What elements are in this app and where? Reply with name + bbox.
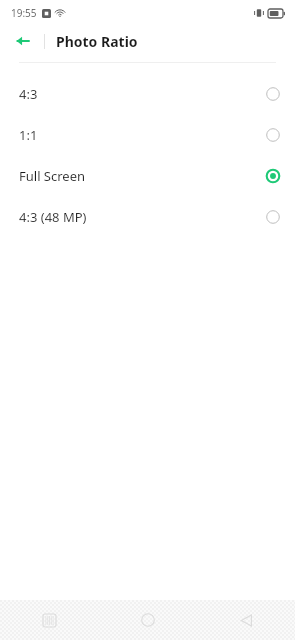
staticText: 1:1 (19, 126, 266, 144)
button[interactable]: Back (197, 600, 295, 640)
button[interactable]: 4:3 (0, 73, 295, 114)
button[interactable]: Full Screen (0, 155, 295, 196)
button[interactable]: Recents (0, 600, 99, 640)
staticText: Photo Ratio (56, 32, 138, 51)
staticText: 19:55 (11, 6, 37, 20)
button[interactable]: 4:3 (48 MP) (0, 196, 295, 237)
button[interactable]: Back (10, 28, 36, 54)
button[interactable]: Home (99, 600, 197, 640)
staticText: 4:3 (48 MP) (19, 208, 266, 226)
button[interactable]: 1:1 (0, 114, 295, 155)
staticText: 4:3 (19, 85, 266, 103)
staticText: Full Screen (19, 167, 266, 185)
